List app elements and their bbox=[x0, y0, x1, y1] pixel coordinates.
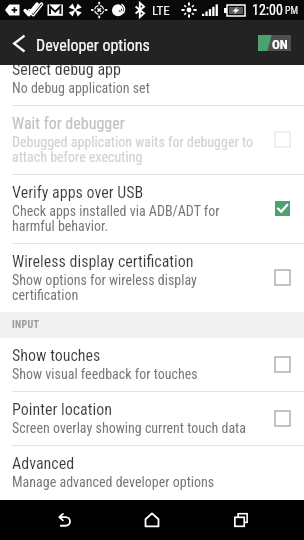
button[interactable]: Select debug app bbox=[0, 65, 304, 105]
button[interactable]: Wireless display certification bbox=[0, 244, 304, 312]
staticText: PM bbox=[285, 5, 299, 17]
staticText: Wait for debugger bbox=[12, 114, 125, 133]
staticText: ON bbox=[272, 37, 288, 52]
staticText: Manage advanced developer options bbox=[12, 475, 215, 490]
button[interactable]: Developer options on bbox=[258, 35, 291, 51]
button[interactable]: Enabled bbox=[275, 201, 290, 216]
staticText: Wireless display certification bbox=[12, 252, 194, 271]
staticText: LTE bbox=[152, 3, 170, 18]
staticText: Show options for wireless display certif… bbox=[12, 273, 258, 303]
button[interactable]: Disabled bbox=[275, 270, 290, 285]
button[interactable]: Verify apps over USB bbox=[0, 175, 304, 243]
staticText: No debug application set bbox=[12, 81, 150, 96]
staticText: Show visual feedback for touches bbox=[12, 367, 198, 382]
button[interactable]: Disabled bbox=[275, 132, 290, 147]
staticText: Advanced bbox=[12, 454, 75, 473]
button[interactable]: Back bbox=[39, 500, 89, 540]
button[interactable]: Show touches bbox=[0, 338, 304, 391]
button[interactable]: Recent apps bbox=[216, 500, 266, 540]
button[interactable]: Wait for debugger bbox=[0, 106, 304, 174]
staticText: Developer options bbox=[36, 36, 150, 55]
staticText: Screen overlay showing current touch dat… bbox=[12, 421, 246, 436]
staticText: Check apps installed via ADB/ADT for har… bbox=[12, 204, 258, 234]
button[interactable]: Pointer location bbox=[0, 392, 304, 445]
button[interactable]: Disabled bbox=[275, 411, 290, 426]
staticText: Verify apps over USB bbox=[12, 183, 144, 202]
staticText: Pointer location bbox=[12, 400, 112, 419]
staticText: Show touches bbox=[12, 346, 101, 365]
staticText: 12:00 bbox=[252, 2, 283, 18]
staticText: INPUT bbox=[12, 319, 40, 331]
staticText: Debugged application waits for debugger … bbox=[12, 135, 258, 165]
button[interactable]: Home bbox=[127, 500, 177, 540]
button[interactable]: Disabled bbox=[275, 357, 290, 372]
button[interactable]: Advanced bbox=[0, 446, 304, 499]
staticText: Select debug app bbox=[12, 65, 121, 79]
button[interactable]: Navigate up bbox=[5, 27, 33, 58]
